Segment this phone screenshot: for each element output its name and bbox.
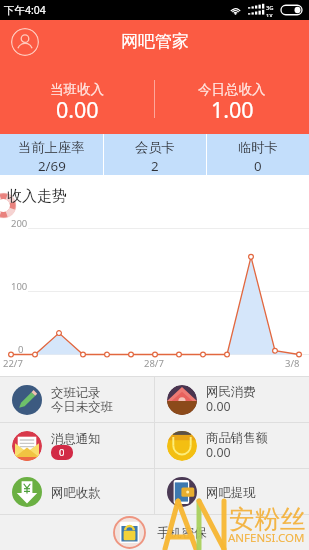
staticText: 商品销售额 [206, 430, 268, 446]
staticText: 2 [151, 157, 159, 175]
button[interactable]: 网吧收款 [0, 469, 154, 514]
staticText: 收入走势 [7, 187, 67, 206]
staticText: 100 [11, 280, 28, 293]
staticText: 0 [18, 343, 24, 356]
button[interactable]: 临时卡 [207, 134, 309, 175]
staticText: 网吧收款 [51, 485, 101, 501]
button[interactable]: 消息通知 [0, 423, 154, 468]
staticText: 今日总收入 [198, 81, 266, 98]
staticText: 下午4:04 [4, 3, 46, 17]
staticText: 网吧管家 [121, 31, 189, 52]
staticText: 2/69 [38, 157, 66, 175]
staticText: 临时卡 [238, 139, 278, 156]
staticText: 今日未交班 [51, 399, 113, 415]
button[interactable]: 网民消费 [155, 377, 309, 422]
button[interactable]: 网吧提现 [155, 469, 309, 514]
staticText: 0 [254, 157, 262, 175]
staticText: 网吧提现 [206, 485, 256, 501]
button[interactable]: 当班收入 [0, 64, 154, 134]
staticText: 0 [59, 446, 65, 459]
staticText: 交班记录 [51, 385, 101, 401]
staticText: 1X [266, 12, 273, 17]
staticText: 1.00 [211, 95, 254, 124]
staticText: 3G [266, 4, 274, 12]
staticText: 当前上座率 [18, 139, 85, 156]
staticText: 200 [11, 217, 28, 230]
button[interactable]: 手机密保 [114, 515, 207, 550]
staticText: 网民消费 [206, 384, 256, 400]
staticText: 消息通知 [51, 431, 101, 447]
button[interactable]: 今日总收入 [155, 64, 309, 134]
staticText: 22/7 [3, 357, 23, 370]
staticText: 0.00 [206, 398, 231, 415]
staticText: 28/7 [144, 357, 164, 370]
staticText: 0.00 [206, 444, 231, 461]
staticText: 安粉丝 [229, 503, 306, 535]
button[interactable]: 交班记录 [0, 377, 154, 422]
staticText: 会员卡 [135, 139, 175, 156]
button[interactable]: 商品销售额 [155, 423, 309, 468]
staticText: ANFENSI.COM [228, 530, 305, 546]
button[interactable]: Profile [11, 28, 39, 56]
staticText: 0.00 [56, 95, 99, 124]
staticText: 手机密保 [157, 525, 207, 541]
button[interactable]: 当前上座率 [0, 134, 103, 175]
button[interactable]: 会员卡 [104, 134, 206, 175]
staticText: 当班收入 [50, 81, 104, 98]
staticText: 3/8 [285, 357, 300, 370]
